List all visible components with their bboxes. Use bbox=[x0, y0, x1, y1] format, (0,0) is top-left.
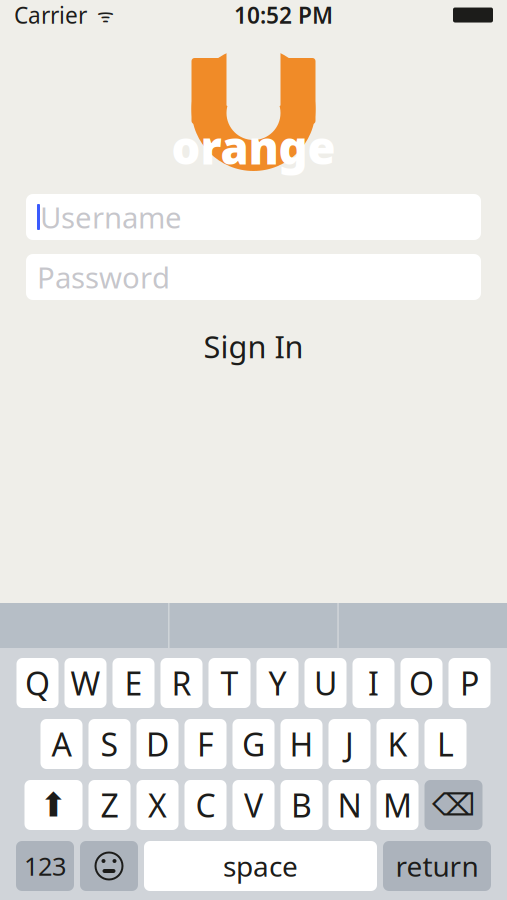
button[interactable]: R bbox=[160, 658, 202, 708]
staticText: O bbox=[409, 662, 434, 704]
staticText: C bbox=[195, 784, 215, 826]
staticText: M bbox=[383, 784, 412, 826]
staticText: A bbox=[51, 723, 71, 765]
staticText: H bbox=[289, 723, 313, 765]
staticText: orange bbox=[171, 117, 335, 177]
button[interactable]: K bbox=[376, 719, 418, 769]
button[interactable]: B bbox=[280, 780, 322, 830]
staticText: 10:52 PM bbox=[234, 0, 333, 30]
staticText: N bbox=[337, 784, 361, 826]
staticText: Password bbox=[37, 257, 170, 296]
staticText: ⬆ bbox=[39, 786, 67, 824]
staticText: X bbox=[148, 784, 167, 826]
staticText: L bbox=[437, 723, 454, 765]
staticText: P bbox=[460, 662, 479, 704]
button[interactable]: M bbox=[376, 780, 418, 830]
staticText: U bbox=[314, 662, 337, 704]
staticText: Sign In bbox=[203, 326, 303, 367]
button[interactable]: I bbox=[352, 658, 394, 708]
button[interactable]: J bbox=[328, 719, 370, 769]
button[interactable]: H bbox=[280, 719, 322, 769]
button[interactable]: S bbox=[88, 719, 130, 769]
staticText: space bbox=[223, 847, 298, 885]
staticText: T bbox=[220, 662, 238, 704]
staticText: D bbox=[146, 723, 169, 765]
button[interactable]: C bbox=[184, 780, 226, 830]
staticText: F bbox=[197, 723, 214, 765]
button[interactable]: V bbox=[232, 780, 274, 830]
staticText: Z bbox=[100, 784, 118, 826]
button[interactable]: O bbox=[400, 658, 442, 708]
staticText: W bbox=[70, 662, 100, 704]
staticText: I bbox=[368, 662, 379, 704]
staticText: B bbox=[291, 784, 312, 826]
staticText: Carrier bbox=[14, 0, 87, 30]
staticText: return bbox=[395, 847, 478, 885]
button[interactable]: A bbox=[40, 719, 82, 769]
button[interactable]: X bbox=[136, 780, 178, 830]
button[interactable]: Shift bbox=[24, 780, 82, 830]
staticText: Username bbox=[40, 197, 182, 236]
staticText: S bbox=[100, 723, 118, 765]
button[interactable]: W bbox=[64, 658, 106, 708]
staticText: R bbox=[171, 662, 191, 704]
staticText: Q bbox=[25, 662, 50, 704]
button[interactable]: Emoji bbox=[80, 841, 138, 891]
button[interactable]: N bbox=[328, 780, 370, 830]
button[interactable]: Password bbox=[26, 254, 481, 300]
staticText: E bbox=[124, 662, 142, 704]
button[interactable]: return bbox=[383, 841, 491, 891]
button[interactable]: U bbox=[304, 658, 346, 708]
staticText: ᯤ bbox=[87, 3, 114, 27]
staticText: 123 bbox=[24, 849, 66, 883]
staticText: Y bbox=[268, 662, 286, 704]
button[interactable]: G bbox=[232, 719, 274, 769]
button[interactable]: Username bbox=[26, 194, 481, 240]
button[interactable]: Q bbox=[16, 658, 58, 708]
staticText: G bbox=[242, 723, 265, 765]
button[interactable]: F bbox=[184, 719, 226, 769]
button[interactable]: Y bbox=[256, 658, 298, 708]
button[interactable]: D bbox=[136, 719, 178, 769]
button[interactable]: L bbox=[424, 719, 466, 769]
button[interactable]: T bbox=[208, 658, 250, 708]
staticText: ⌫ bbox=[432, 788, 475, 822]
button[interactable]: 123 bbox=[16, 841, 74, 891]
button[interactable]: E bbox=[112, 658, 154, 708]
button[interactable]: space bbox=[144, 841, 377, 891]
button[interactable]: Z bbox=[88, 780, 130, 830]
staticText: J bbox=[345, 723, 354, 765]
staticText: V bbox=[244, 784, 263, 826]
button[interactable]: Sign In bbox=[0, 316, 507, 377]
button[interactable]: Delete bbox=[424, 780, 482, 830]
button[interactable]: P bbox=[448, 658, 490, 708]
staticText: K bbox=[387, 723, 407, 765]
